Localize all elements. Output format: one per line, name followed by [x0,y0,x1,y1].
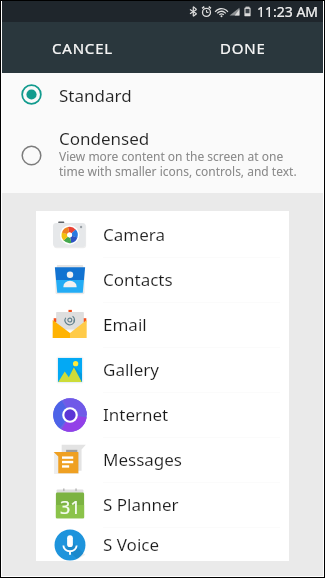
button[interactable]: DONE [162,22,323,73]
button[interactable]: Internet [36,392,289,437]
staticText: 31 [60,495,81,520]
staticText: Email [103,313,147,336]
staticText: Contacts [103,268,173,291]
button[interactable]: Email [36,302,289,347]
button[interactable]: Standard [2,73,323,118]
button[interactable]: CANCEL [2,22,162,73]
staticText: 11:23 AM [257,2,319,21]
staticText: S Voice [103,533,160,556]
button[interactable]: Camera [36,212,289,257]
staticText: Standard [59,84,132,107]
button[interactable]: S Voice [36,527,289,561]
staticText: DONE [220,38,266,58]
button[interactable]: Contacts [36,257,289,302]
staticText: Camera [103,223,165,246]
staticText: S Planner [103,493,179,516]
staticText: Condensed [59,127,150,150]
staticText: CANCEL [52,38,113,58]
button[interactable]: 31 [36,482,289,527]
button[interactable]: Gallery [36,347,289,392]
button[interactable]: Condensed [2,118,323,193]
staticText: Internet [103,403,169,426]
staticText: Gallery [103,358,159,381]
staticText: Messages [103,448,183,471]
button[interactable]: Messages [36,437,289,482]
staticText: View more content on the screen at one t… [59,148,309,179]
